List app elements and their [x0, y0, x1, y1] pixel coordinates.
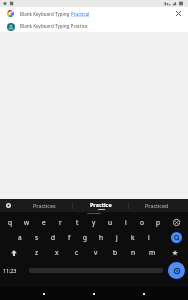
- staticText: s: [35, 233, 39, 242]
- staticText: e: [42, 218, 46, 227]
- button[interactable]: Back: [38, 288, 50, 300]
- button[interactable]: h: [93, 230, 109, 245]
- button[interactable]: Practiced: [129, 199, 184, 212]
- button[interactable]: m: [143, 245, 162, 260]
- button[interactable]: x: [47, 245, 67, 260]
- button[interactable]: Blank Keyboard Typing Practice: [0, 20, 188, 32]
- staticText: y: [92, 218, 96, 227]
- staticText: k: [131, 233, 135, 242]
- button[interactable]: Practice: [73, 199, 128, 212]
- staticText: p: [156, 218, 160, 227]
- staticText: n: [131, 248, 136, 257]
- button[interactable]: Blank Keyboard Typing: [0, 7, 188, 20]
- button[interactable]: Practices: [16, 199, 72, 212]
- staticText: Practical: [71, 11, 90, 17]
- button[interactable]: 11:23: [3, 260, 29, 280]
- button[interactable]: w: [18, 215, 35, 230]
- staticText: d: [51, 233, 55, 242]
- staticText: 11:23: [3, 267, 17, 274]
- button[interactable]: v: [86, 245, 105, 260]
- button[interactable]: Search: [166, 230, 187, 245]
- button[interactable]: z: [27, 245, 47, 260]
- button[interactable]: c: [67, 245, 86, 260]
- button[interactable]: Shift: [1, 245, 27, 260]
- button[interactable]: Emoji: [162, 245, 187, 260]
- staticText: o: [140, 218, 144, 227]
- button[interactable]: g: [77, 230, 93, 245]
- button[interactable]: Clear: [174, 9, 183, 18]
- staticText: z: [35, 248, 39, 257]
- staticText: m: [149, 248, 156, 257]
- button[interactable]: Home: [88, 288, 100, 300]
- button[interactable]: k: [125, 230, 141, 245]
- button[interactable]: i: [118, 215, 134, 230]
- button[interactable]: b: [105, 245, 124, 260]
- staticText: x: [55, 248, 59, 257]
- staticText: b: [113, 248, 117, 257]
- staticText: Practice: [90, 201, 112, 208]
- button[interactable]: t: [69, 215, 86, 230]
- button[interactable]: Voice input: [168, 262, 185, 279]
- button[interactable]: j: [109, 230, 125, 245]
- button[interactable]: y: [86, 215, 102, 230]
- staticText: l: [148, 233, 150, 242]
- button[interactable]: d: [45, 230, 61, 245]
- staticText: w: [24, 218, 30, 227]
- staticText: a: [18, 233, 22, 242]
- staticText: q: [8, 218, 12, 227]
- button[interactable]: u: [102, 215, 118, 230]
- staticText: g: [83, 233, 87, 242]
- button[interactable]: Recents: [138, 288, 150, 300]
- button[interactable]: l: [141, 230, 157, 245]
- staticText: r: [59, 218, 62, 227]
- button[interactable]: q: [1, 215, 18, 230]
- button[interactable]: f: [61, 230, 77, 245]
- button[interactable]: Backspace: [166, 215, 187, 230]
- button[interactable]: e: [35, 215, 52, 230]
- button[interactable]: o: [134, 215, 150, 230]
- button[interactable]: a: [11, 230, 28, 245]
- button[interactable]: r: [52, 215, 69, 230]
- staticText: i: [125, 218, 127, 227]
- staticText: v: [94, 248, 98, 257]
- staticText: Blank Keyboard Typing Practice: [20, 23, 88, 29]
- staticText: u: [108, 218, 113, 227]
- staticText: c: [75, 248, 79, 257]
- staticText: Practiced: [145, 202, 169, 209]
- staticText: t: [76, 218, 79, 227]
- staticText: j: [116, 233, 118, 242]
- button[interactable]: p: [150, 215, 166, 230]
- staticText: Practices: [33, 202, 56, 209]
- staticText: h: [99, 233, 104, 242]
- staticText: Blank Keyboard Typing: [20, 11, 71, 17]
- button[interactable]: Keyboard settings: [0, 199, 16, 212]
- button[interactable]: s: [28, 230, 45, 245]
- staticText: f: [68, 233, 71, 242]
- button[interactable]: n: [124, 245, 143, 260]
